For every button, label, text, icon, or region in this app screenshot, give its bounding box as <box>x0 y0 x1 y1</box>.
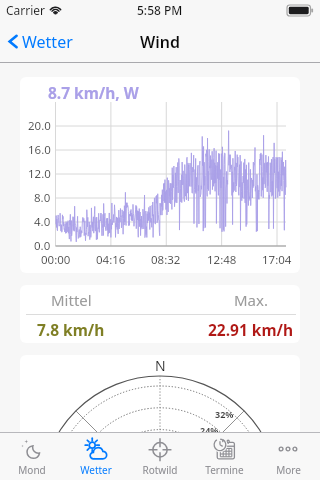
staticText: Rotwild <box>142 463 178 477</box>
staticText: 20.0 <box>28 118 51 134</box>
staticText: 12:48 <box>207 252 237 268</box>
button[interactable]: Rotwild <box>128 433 192 480</box>
button[interactable]: Wetter <box>7 20 73 63</box>
staticText: 16.0 <box>28 142 51 158</box>
staticText: Mittel <box>51 290 92 310</box>
staticText: 12.0 <box>28 166 51 182</box>
staticText: 0.0 <box>34 238 51 254</box>
staticText: Max. <box>234 290 268 310</box>
staticText: 24% <box>200 424 219 436</box>
staticText: 00:00 <box>41 252 71 268</box>
button[interactable]: More <box>256 433 320 480</box>
staticText: 8.0 <box>34 190 51 206</box>
staticText: 7.8 km/h <box>37 319 105 340</box>
staticText: More <box>276 463 301 477</box>
staticText: 4.0 <box>34 214 51 230</box>
staticText: Mond <box>18 463 46 477</box>
button[interactable]: Termine <box>192 433 256 480</box>
button[interactable]: Wetter <box>64 433 128 480</box>
staticText: N <box>155 356 166 375</box>
staticText: 8.7 km/h, W <box>48 82 139 103</box>
staticText: 08:32 <box>151 252 181 268</box>
staticText: Wetter <box>22 31 73 53</box>
staticText: 22.91 km/h <box>208 319 294 340</box>
staticText: Wind <box>140 31 181 53</box>
staticText: Wetter <box>80 463 112 477</box>
staticText: Termine <box>205 463 244 477</box>
staticText: 32% <box>215 408 234 420</box>
staticText: 04:16 <box>96 252 126 268</box>
staticText: 5:58 PM <box>137 2 183 18</box>
staticText: 17:04 <box>262 252 292 268</box>
staticText: Carrier <box>6 2 46 18</box>
button[interactable]: Mond <box>0 433 64 480</box>
